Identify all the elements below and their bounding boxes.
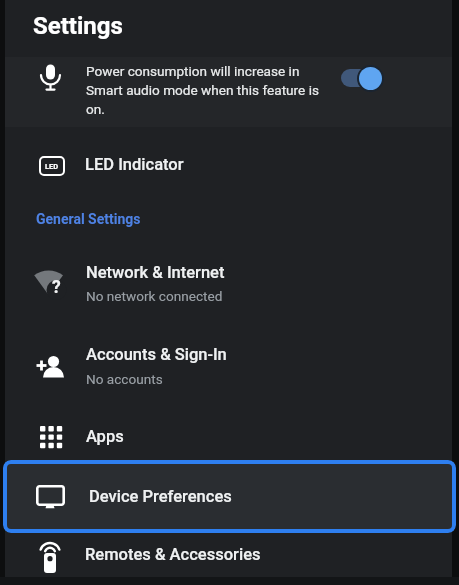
staticText: Device Preferences xyxy=(89,487,232,506)
staticText: Apps xyxy=(86,427,124,446)
button[interactable]: Apps xyxy=(0,410,459,460)
staticText: No accounts xyxy=(86,371,163,387)
staticText: No network connected xyxy=(86,288,223,304)
staticText: ? xyxy=(52,277,61,298)
staticText: Settings xyxy=(33,12,123,40)
staticText: LED xyxy=(45,162,59,171)
staticText: Network & Internet xyxy=(86,263,225,282)
button[interactable]: Power consumption will increase in Smart… xyxy=(0,57,459,127)
staticText: Power consumption will increase in Smart… xyxy=(86,63,319,117)
button[interactable]: Remotes & Accessories xyxy=(0,533,459,585)
staticText: LED Indicator xyxy=(85,155,184,174)
staticText: Accounts & Sign-In xyxy=(86,345,227,364)
button[interactable]: Network & Internet xyxy=(0,252,459,314)
button[interactable]: Device Preferences xyxy=(3,460,456,533)
button[interactable]: LED xyxy=(0,140,459,192)
button[interactable]: Accounts & Sign-In xyxy=(0,338,459,400)
staticText: Remotes & Accessories xyxy=(85,545,261,564)
staticText: General Settings xyxy=(36,211,141,227)
